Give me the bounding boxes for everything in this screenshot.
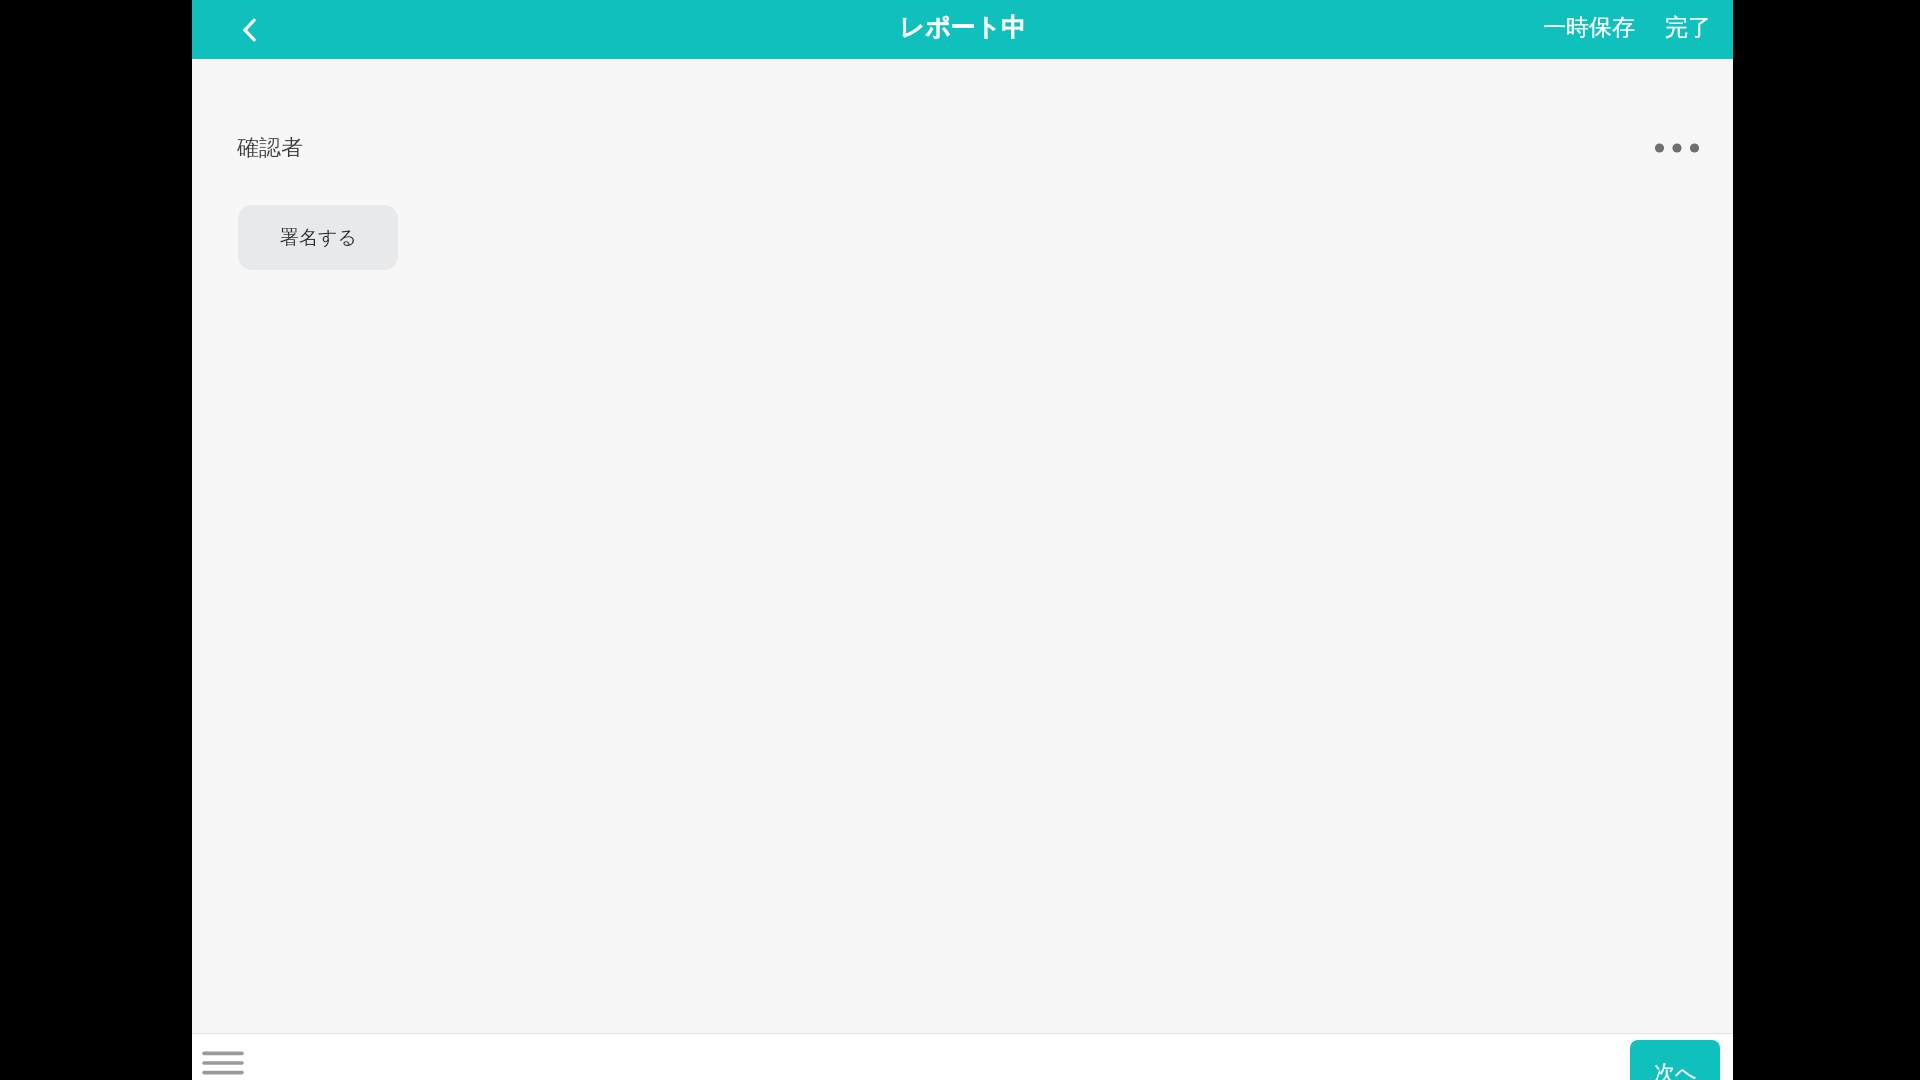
staticText: 一時保存 [1543, 13, 1635, 42]
button[interactable]: Back [224, 4, 276, 56]
button[interactable]: More options [1649, 120, 1705, 176]
staticText: レポート中 [899, 12, 1026, 43]
staticText: 完了 [1665, 13, 1711, 42]
button[interactable]: 完了 [1657, 5, 1719, 50]
button[interactable]: Menu [195, 1039, 251, 1080]
staticText: 確認者 [237, 134, 303, 162]
button[interactable]: 署名する [238, 205, 398, 270]
staticText: 署名する [280, 226, 357, 250]
staticText: 次へ [1654, 1060, 1697, 1080]
button[interactable]: 次へ [1630, 1040, 1720, 1080]
button[interactable]: 一時保存 [1535, 5, 1643, 50]
